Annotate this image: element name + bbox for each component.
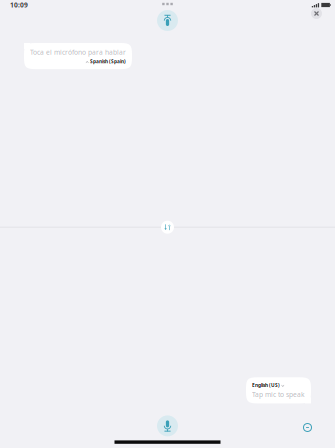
button[interactable]: Close <box>311 8 322 19</box>
button[interactable]: More <box>159 0 176 8</box>
button[interactable]: More options <box>303 423 312 432</box>
staticText: Toca el micrófono para hablar <box>30 47 126 57</box>
staticText: 10:09 <box>10 0 28 10</box>
button[interactable]: Tap to speak <box>157 415 178 436</box>
button[interactable]: Toca el micrófono para hablar <box>24 43 132 69</box>
staticText: Spanish (Spain) <box>90 58 126 65</box>
button[interactable]: Tap to speak <box>157 10 178 31</box>
staticText: Tap mic to speak <box>252 390 305 399</box>
staticText: English (US) <box>252 382 280 388</box>
button[interactable]: Swap languages <box>161 221 174 234</box>
button[interactable]: English (US) <box>246 377 311 403</box>
